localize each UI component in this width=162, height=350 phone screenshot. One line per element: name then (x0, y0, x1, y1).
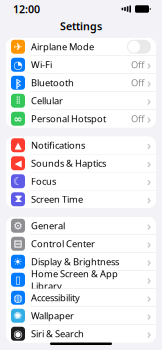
staticText: › (147, 111, 151, 127)
button[interactable]: ⦙⦙ (6, 92, 156, 109)
staticText: › (147, 254, 151, 270)
button[interactable]: ▲ (6, 136, 156, 154)
staticText: Bluetooth (31, 77, 74, 89)
staticText: Display & Brightness (31, 256, 119, 268)
button[interactable]: ✈ (6, 38, 156, 55)
staticText: Focus (31, 175, 56, 187)
staticText: › (147, 218, 151, 234)
staticText: › (147, 290, 151, 306)
button[interactable]: ◉ (6, 325, 156, 342)
staticText: ∞ (13, 113, 22, 125)
staticText: Airplane Mode (31, 41, 94, 53)
staticText: Settings (60, 19, 102, 33)
staticText: ◉ (13, 328, 22, 340)
staticText: ✈ (13, 41, 22, 53)
staticText: Wallpaper (31, 310, 74, 322)
button[interactable]: ☾ (6, 172, 156, 190)
staticText: Off (131, 59, 144, 71)
staticText: ⚙ (13, 220, 23, 232)
button[interactable]: ◍ (6, 289, 156, 306)
staticText: Cellular (31, 95, 63, 107)
staticText: › (147, 308, 151, 324)
button[interactable]: ☀ (6, 253, 156, 270)
button[interactable]: ⊟ (6, 235, 156, 252)
staticText: › (147, 155, 151, 171)
button[interactable]: ⚙ (6, 217, 156, 234)
staticText: ᛒ (15, 76, 20, 89)
staticText: ◔ (13, 59, 22, 71)
button[interactable]: ᛒ (6, 74, 156, 91)
staticText: ☀ (13, 256, 23, 268)
staticText: › (147, 93, 151, 109)
staticText: Wi-Fi (31, 59, 52, 71)
staticText: ▲ (14, 140, 21, 151)
staticText: ▯ (15, 274, 21, 286)
staticText: Personal Hotspot (31, 113, 106, 125)
staticText: Off (131, 113, 144, 125)
button[interactable]: ◔ (6, 56, 156, 73)
staticText: Screen Time (31, 193, 83, 205)
staticText: › (147, 191, 151, 207)
staticText: ✺ (13, 310, 22, 322)
staticText: Sounds & Haptics (31, 157, 106, 169)
staticText: Accessibility (31, 292, 80, 304)
staticText: 12:00 (13, 2, 40, 16)
staticText: General (31, 220, 65, 232)
staticText: ☾ (13, 175, 23, 187)
staticText: › (147, 75, 151, 91)
button[interactable]: ∞ (6, 110, 156, 127)
staticText: › (147, 137, 151, 153)
staticText: › (147, 173, 151, 189)
staticText: Notifications (31, 139, 85, 151)
button[interactable]: ✺ (6, 307, 156, 324)
staticText: ⦙⦙ (16, 96, 20, 105)
button[interactable]: ⧗ (6, 190, 156, 208)
button[interactable]: ◀ (6, 154, 156, 172)
staticText: › (147, 272, 151, 288)
staticText: Siri & Search (31, 328, 84, 340)
staticText: ◍ (13, 292, 22, 304)
button[interactable]: ▯ (6, 271, 156, 288)
staticText: › (147, 57, 151, 73)
staticText: ◀ (14, 158, 21, 169)
staticText: Home Screen & App Library (31, 267, 118, 292)
staticText: › (147, 326, 151, 342)
staticText: Off (131, 77, 144, 89)
staticText: › (147, 236, 151, 252)
staticText: ⧗ (14, 194, 21, 204)
staticText: ⊟ (13, 238, 22, 250)
staticText: Control Center (31, 238, 95, 250)
